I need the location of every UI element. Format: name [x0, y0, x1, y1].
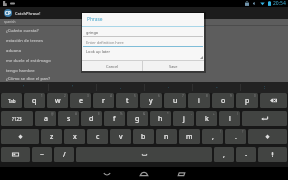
- button[interactable]: Emoji: [1, 147, 30, 162]
- button[interactable]: m: [179, 129, 200, 144]
- button[interactable]: z: [41, 129, 62, 144]
- other: Space: [139, 149, 150, 160]
- button[interactable]: Enter definition here: [82, 37, 204, 47]
- staticText: aduana: [6, 48, 22, 54]
- staticText: tengo hambre: [6, 68, 35, 74]
- staticText: (: [237, 112, 238, 116]
- button[interactable]: g: [127, 111, 148, 126]
- button[interactable]: o: [212, 93, 234, 108]
- button[interactable]: f: [104, 111, 125, 126]
- button[interactable]: Backspace: [260, 93, 287, 108]
- button[interactable]: ¿Cómo se dice el pan?: [0, 76, 288, 82]
- button[interactable]: h: [150, 111, 171, 126]
- staticText: estación de trenes: [6, 38, 44, 44]
- staticText: x: [73, 132, 77, 142]
- button[interactable]: k: [196, 111, 217, 126]
- button[interactable]: r: [93, 93, 114, 108]
- button[interactable]: Shift: [1, 129, 39, 144]
- button[interactable]: e: [70, 93, 91, 108]
- button[interactable]: n: [156, 129, 177, 144]
- staticText: r: [102, 96, 105, 106]
- staticText: .: [120, 84, 122, 91]
- button[interactable]: Look up later: [82, 47, 204, 60]
- staticText: 3: [87, 94, 89, 98]
- staticText: j: [183, 114, 185, 124]
- button[interactable]: Enter: [242, 111, 287, 126]
- button[interactable]: x: [64, 129, 85, 144]
- staticText: -: [191, 112, 192, 116]
- button[interactable]: i: [188, 93, 210, 108]
- staticText: !: [220, 130, 221, 134]
- staticText: &: [143, 112, 146, 116]
- button[interactable]: .: [225, 129, 246, 144]
- staticText: Tab: [8, 98, 16, 104]
- staticText: Look up later: [86, 49, 111, 54]
- button[interactable]: Shift: [248, 129, 287, 144]
- button[interactable]: me duele el estómago: [0, 56, 288, 66]
- staticText: 4: [110, 94, 112, 98]
- button[interactable]: ,: [214, 147, 234, 162]
- button[interactable]: b: [133, 129, 154, 144]
- button[interactable]: d: [81, 111, 102, 126]
- button[interactable]: Cancel: [82, 61, 142, 71]
- button[interactable]: u: [164, 93, 186, 108]
- button[interactable]: CP: [0, 7, 288, 19]
- staticText: @: [51, 112, 54, 116]
- staticText: g: [135, 114, 140, 124]
- staticText: ,: [212, 132, 214, 142]
- button[interactable]: Voice input: [258, 147, 287, 162]
- staticText: ¿Cómo se dice el pan?: [6, 76, 51, 82]
- button[interactable]: Save: [143, 61, 204, 71]
- button[interactable]: /: [54, 147, 74, 162]
- staticText: t: [126, 96, 129, 106]
- staticText: f: [113, 114, 116, 124]
- staticText: *: [167, 112, 169, 116]
- button[interactable]: c: [87, 129, 108, 144]
- button[interactable]: ?123: [1, 111, 33, 126]
- staticText: /: [63, 150, 66, 160]
- button[interactable]: Space: [76, 147, 212, 162]
- button[interactable]: w: [47, 93, 68, 108]
- button[interactable]: p: [236, 93, 258, 108]
- button[interactable]: Back: [100, 167, 114, 180]
- staticText: CP: [5, 10, 11, 16]
- button[interactable]: Tab: [1, 93, 22, 108]
- button[interactable]: j: [173, 111, 194, 126]
- button[interactable]: gringo: [82, 27, 204, 37]
- staticText: k: [205, 114, 209, 124]
- staticText: Phrase: [87, 16, 103, 23]
- staticText: 9: [230, 94, 232, 98]
- button[interactable]: a: [35, 111, 56, 126]
- button[interactable]: ¿Cuánto cuesta?: [0, 26, 288, 36]
- staticText: a: [44, 114, 48, 124]
- staticText: me duele el estómago: [6, 58, 51, 64]
- staticText: spanish: [4, 20, 16, 24]
- button[interactable]: ~: [32, 147, 52, 162]
- button[interactable]: estación de trenes: [0, 36, 288, 46]
- other: Enter: [259, 113, 270, 124]
- button[interactable]: y: [140, 93, 162, 108]
- staticText: e: [79, 96, 83, 106]
- staticText: z: [50, 132, 54, 142]
- button[interactable]: -: [236, 147, 256, 162]
- button[interactable]: t: [116, 93, 138, 108]
- button[interactable]: s: [58, 111, 79, 126]
- button[interactable]: tengo hambre: [0, 66, 288, 76]
- button[interactable]: Home: [137, 167, 151, 180]
- button[interactable]: l: [219, 111, 240, 126]
- staticText: i: [198, 96, 200, 106]
- button[interactable]: Recent apps: [174, 167, 188, 180]
- button[interactable]: v: [110, 129, 131, 144]
- button[interactable]: q: [24, 93, 45, 108]
- staticText: ?: [242, 130, 244, 134]
- button[interactable]: aduana: [0, 46, 288, 56]
- button[interactable]: ,: [202, 129, 223, 144]
- other: Backspace: [268, 95, 279, 106]
- staticText: 0: [254, 94, 256, 98]
